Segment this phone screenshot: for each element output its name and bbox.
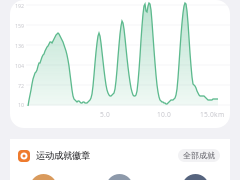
staticText: 72 xyxy=(18,82,24,90)
staticText: 192 xyxy=(15,2,24,10)
staticText: 10.0 xyxy=(157,110,171,119)
staticText: 104 xyxy=(15,62,24,70)
staticText: 5.0 xyxy=(100,110,110,119)
staticText: 10 xyxy=(18,101,24,109)
staticText: 全部成就 xyxy=(183,151,215,160)
button[interactable]: 全部成就 xyxy=(178,149,220,162)
staticText: 运动成就徽章 xyxy=(36,150,90,161)
staticText: 15.0km xyxy=(200,110,224,119)
staticText: 136 xyxy=(15,42,24,50)
staticText: 159 xyxy=(15,22,24,30)
